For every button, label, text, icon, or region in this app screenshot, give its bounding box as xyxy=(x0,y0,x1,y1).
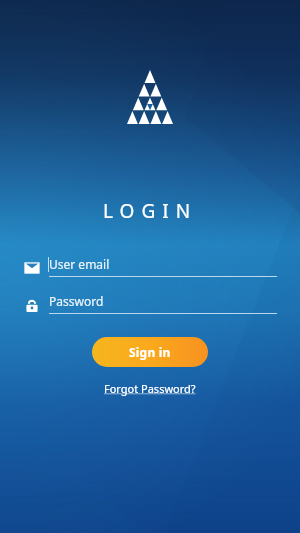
staticText: User email xyxy=(49,256,110,272)
staticText: Forgot Password? xyxy=(104,381,196,396)
staticText: Password xyxy=(49,293,104,309)
staticText: Sign in xyxy=(129,344,171,360)
other: Password xyxy=(23,296,41,314)
button[interactable]: Email xyxy=(23,256,277,277)
button[interactable]: Forgot Password? xyxy=(98,378,202,399)
other: Email xyxy=(23,259,41,277)
staticText: LOGIN xyxy=(103,198,198,224)
button[interactable]: Sign in xyxy=(92,337,208,367)
button[interactable]: Password xyxy=(23,293,277,314)
